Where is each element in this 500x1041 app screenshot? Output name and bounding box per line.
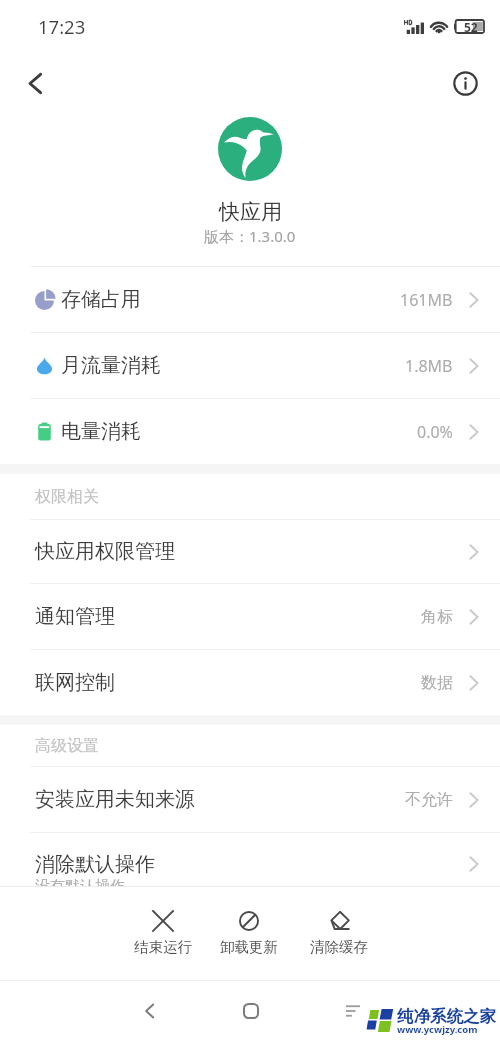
button[interactable]: Recents — [329, 981, 377, 1041]
button[interactable]: 存储占用 — [0, 267, 500, 332]
staticText: 快应用 — [219, 199, 282, 225]
button[interactable]: 通知管理 — [0, 584, 500, 649]
button[interactable]: 清除缓存 — [296, 907, 382, 960]
staticText: 联网控制 — [35, 670, 115, 695]
button[interactable]: 快应用权限管理 — [0, 520, 500, 583]
button[interactable]: 联网控制 — [0, 650, 500, 715]
staticText: 电量消耗 — [61, 419, 141, 444]
staticText: 结束运行 — [134, 938, 192, 956]
button[interactable]: 电量消耗 — [0, 399, 500, 464]
staticText: 月流量消耗 — [61, 353, 161, 378]
staticText: www.ycwjzy.com — [397, 1023, 478, 1036]
staticText: 清除缓存 — [310, 938, 368, 956]
staticText: 数据 — [421, 673, 453, 693]
staticText: 没有默认操作 — [35, 877, 125, 896]
staticText: 消除默认操作 — [35, 852, 155, 877]
staticText: 版本：1.3.0.0 — [204, 226, 296, 246]
button[interactable]: 月流量消耗 — [0, 333, 500, 398]
staticText: 通知管理 — [35, 604, 115, 629]
staticText: 0.0% — [417, 421, 453, 443]
button[interactable]: Home — [227, 981, 275, 1041]
staticText: 快应用权限管理 — [35, 539, 175, 564]
button[interactable]: 卸载更新 — [206, 907, 292, 960]
staticText: 高级设置 — [35, 736, 99, 756]
staticText: 1.8MB — [405, 355, 453, 377]
button[interactable]: 消除默认操作 — [0, 833, 500, 898]
staticText: 纯净系统之家 — [397, 1006, 496, 1027]
staticText: 不允许 — [405, 790, 453, 810]
staticText: 权限相关 — [35, 487, 99, 507]
staticText: 161MB — [400, 289, 453, 311]
button[interactable]: 安装应用未知来源 — [0, 767, 500, 832]
staticText: 17:23 — [38, 14, 86, 39]
staticText: 存储占用 — [61, 287, 141, 312]
staticText: 52 — [464, 19, 478, 35]
button[interactable]: 结束运行 — [120, 907, 206, 960]
button[interactable]: App info — [442, 60, 488, 106]
button[interactable]: Back — [126, 981, 174, 1041]
staticText: 卸载更新 — [220, 938, 278, 956]
staticText: 安装应用未知来源 — [35, 787, 195, 812]
staticText: 角标 — [421, 607, 453, 627]
button[interactable]: Back — [12, 60, 58, 106]
